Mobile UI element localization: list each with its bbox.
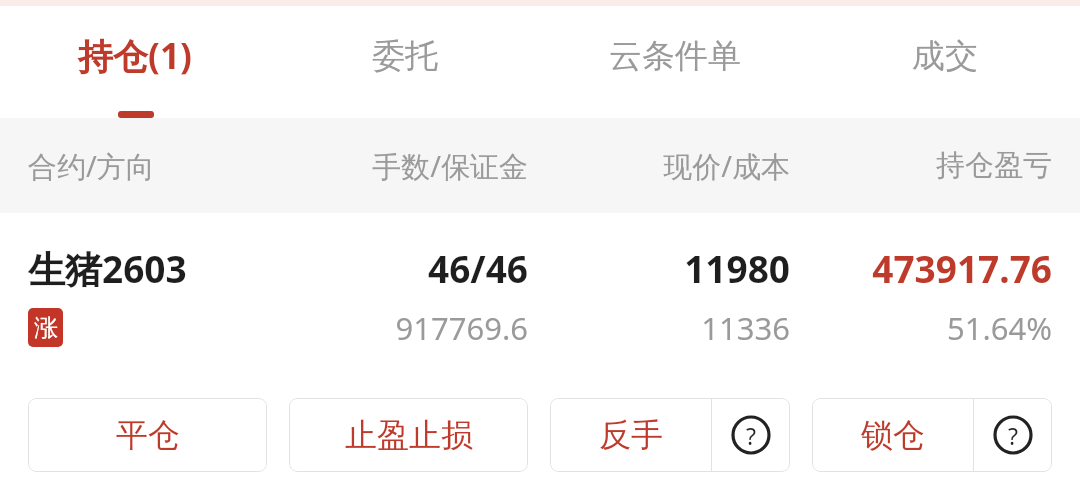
staticText: 917769.6 [278,307,528,349]
button[interactable]: 委托 [270,6,540,118]
staticText: 云条件单 [609,35,741,77]
staticText: 反手 [599,415,663,455]
staticText: 473917.76 [790,243,1052,293]
staticText: 11336 [528,307,790,349]
button[interactable]: 云条件单 [540,6,810,118]
button[interactable]: 成交 [810,6,1080,118]
button[interactable]: Help [712,398,790,472]
staticText: 止盈止损 [345,415,473,455]
button[interactable]: 持仓(1) [0,6,270,118]
staticText: 持仓盈亏 [790,147,1052,184]
button[interactable]: Help [974,398,1052,472]
staticText: 委托 [372,35,438,77]
staticText: 46/46 [278,243,528,293]
staticText: ? [1008,420,1018,451]
staticText: 合约/方向 [28,146,278,186]
staticText: 平仓 [116,415,180,455]
staticText: ? [746,420,756,451]
button[interactable]: 反手 [550,398,711,472]
staticText: 持仓(1) [78,32,192,80]
staticText: 涨 [34,313,58,343]
button[interactable]: 生猪2603 [0,213,1080,385]
staticText: 锁仓 [861,415,925,455]
staticText: 生猪2603 [28,243,278,294]
staticText: 成交 [912,35,978,77]
staticText: 手数/保证金 [278,146,528,186]
button[interactable]: 平仓 [28,398,267,472]
button[interactable]: 锁仓 [812,398,973,472]
staticText: 现价/成本 [528,146,790,186]
staticText: 51.64% [790,307,1052,349]
button[interactable]: 止盈止损 [289,398,528,472]
staticText: 11980 [528,243,790,293]
